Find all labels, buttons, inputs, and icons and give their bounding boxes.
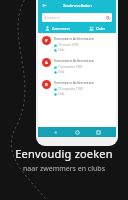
button[interactable]: Zoekterm bbox=[42, 13, 112, 22]
staticText: 15 maart 1993 bbox=[58, 43, 79, 47]
staticText: V bbox=[45, 38, 48, 43]
staticText: Zwemmers bbox=[52, 26, 70, 31]
staticText: Club bbox=[58, 70, 65, 74]
button[interactable]: Home bbox=[73, 128, 82, 137]
staticText: Club bbox=[58, 48, 65, 52]
staticText: 22 augustus 1990 bbox=[58, 87, 83, 91]
button[interactable]: Recents bbox=[94, 128, 103, 137]
staticText: Zoekterm bbox=[44, 15, 106, 20]
staticText: Voornaam Achternaam bbox=[54, 80, 94, 85]
staticText: Voornaam Achternaam bbox=[54, 58, 94, 63]
button[interactable]: A bbox=[38, 55, 116, 77]
staticText: Clubs bbox=[96, 26, 105, 31]
button[interactable]: Clubs bbox=[77, 24, 116, 33]
staticText: 7 november 1987 bbox=[58, 65, 83, 69]
staticText: naar zwemmers en clubs bbox=[23, 164, 105, 174]
staticText: A bbox=[45, 60, 48, 65]
staticText: Voornaam Achternaam bbox=[54, 36, 94, 41]
staticText: Eenvoudig zoeken bbox=[15, 146, 113, 161]
button[interactable]: V bbox=[38, 33, 116, 55]
button[interactable]: Back bbox=[40, 1, 49, 10]
staticText: R bbox=[45, 82, 48, 87]
staticText: Club bbox=[58, 92, 65, 96]
staticText: Zoekresultaten bbox=[63, 3, 92, 8]
button[interactable]: Back bbox=[51, 128, 60, 137]
button[interactable]: Zwemmers bbox=[38, 24, 77, 33]
button[interactable]: R bbox=[38, 77, 116, 99]
